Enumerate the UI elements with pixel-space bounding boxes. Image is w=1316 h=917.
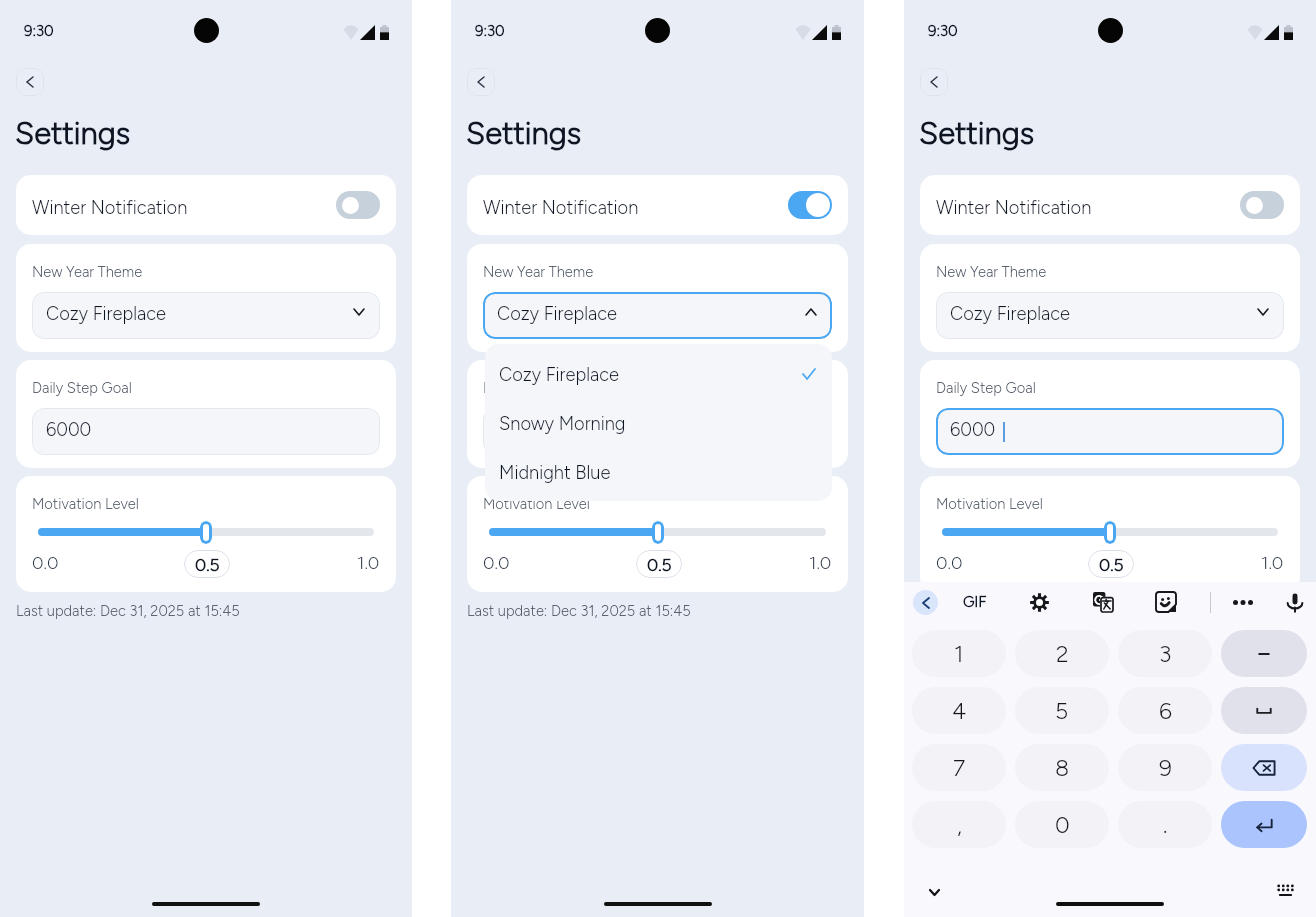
- staticText: 9: [1159, 754, 1172, 782]
- staticText: Motivation Level: [936, 495, 1043, 513]
- staticText: 6000: [950, 419, 996, 441]
- staticText: Settings: [466, 115, 582, 152]
- staticText: Motivation Level: [483, 495, 590, 513]
- staticText: New Year Theme: [483, 263, 594, 281]
- staticText: 1.0: [809, 552, 832, 574]
- staticText: 0.5: [195, 554, 220, 575]
- button[interactable]: 2: [1015, 630, 1109, 677]
- button[interactable]: Snowy Morning: [485, 398, 832, 447]
- staticText: Midnight Blue: [499, 462, 611, 484]
- button[interactable]: 6: [1118, 687, 1212, 734]
- staticText: Motivation Level: [32, 495, 139, 513]
- staticText: Cozy Fireplace: [46, 303, 166, 325]
- button[interactable]: More options: [1233, 600, 1253, 605]
- staticText: 1.0: [1261, 552, 1284, 574]
- staticText: 9:30: [475, 22, 505, 40]
- staticText: 3: [1159, 640, 1172, 668]
- staticText: 8: [1055, 754, 1070, 782]
- staticText: Daily Step Goal: [483, 379, 583, 397]
- staticText: 0.0: [936, 552, 963, 574]
- staticText: Last update: Dec 31, 2025 at 15:45: [920, 602, 1144, 620]
- button[interactable]: Cozy Fireplace: [483, 292, 832, 339]
- staticText: ,: [957, 811, 962, 839]
- button[interactable]: Toggle Winter Notification: [1240, 191, 1284, 219]
- button[interactable]: Space: [1221, 687, 1307, 734]
- staticText: New Year Theme: [936, 263, 1047, 281]
- button[interactable]: Hide keyboard: [929, 889, 940, 896]
- button[interactable]: .: [1118, 801, 1212, 848]
- button[interactable]: 1: [912, 630, 1006, 677]
- staticText: Winter Notification: [936, 197, 1092, 219]
- button[interactable]: 0.5: [636, 550, 682, 578]
- staticText: 0.0: [483, 552, 510, 574]
- button[interactable]: Motivation slider: [652, 521, 664, 544]
- button[interactable]: 7: [912, 744, 1006, 791]
- button[interactable]: Winter Notification: [920, 175, 1300, 235]
- staticText: Winter Notification: [32, 197, 188, 219]
- staticText: 0: [1055, 811, 1070, 839]
- button[interactable]: Midnight Blue: [485, 447, 832, 496]
- staticText: 9:30: [24, 22, 54, 40]
- staticText: Cozy Fireplace: [950, 303, 1070, 325]
- staticText: 7: [953, 754, 966, 782]
- staticText: .: [1163, 811, 1168, 839]
- staticText: 6: [1159, 697, 1172, 725]
- button[interactable]: Backspace: [1221, 744, 1307, 791]
- button[interactable]: 3: [1118, 630, 1212, 677]
- button[interactable]: Voice input: [1287, 593, 1303, 612]
- staticText: 1: [954, 640, 964, 668]
- staticText: Cozy Fireplace: [499, 364, 619, 386]
- button[interactable]: 9: [1118, 744, 1212, 791]
- staticText: Cozy Fireplace: [497, 303, 617, 325]
- button[interactable]: Back: [467, 68, 495, 96]
- staticText: 6000: [497, 419, 543, 441]
- button[interactable]: Stickers: [1156, 592, 1176, 612]
- staticText: Last update: Dec 31, 2025 at 15:45: [467, 602, 691, 620]
- button[interactable]: 0.5: [184, 550, 230, 578]
- staticText: 5: [1055, 697, 1069, 725]
- staticText: Daily Step Goal: [32, 379, 132, 397]
- button[interactable]: 8: [1015, 744, 1109, 791]
- button[interactable]: Toggle Winter Notification: [336, 191, 380, 219]
- staticText: 0.5: [1099, 554, 1124, 575]
- staticText: 2: [1056, 640, 1069, 668]
- staticText: Snowy Morning: [499, 413, 626, 435]
- button[interactable]: Switch keyboard: [1277, 885, 1294, 896]
- button[interactable]: 6000: [936, 408, 1284, 455]
- button[interactable]: 0.5: [1088, 550, 1134, 578]
- staticText: 9:30: [928, 22, 958, 40]
- button[interactable]: Cozy Fireplace: [32, 292, 380, 339]
- button[interactable]: GIF: [963, 593, 987, 611]
- staticText: 1.0: [357, 552, 380, 574]
- button[interactable]: ,: [912, 801, 1006, 848]
- button[interactable]: Back: [920, 68, 948, 96]
- button[interactable]: 0: [1015, 801, 1109, 848]
- button[interactable]: Keyboard settings: [1030, 593, 1049, 612]
- button[interactable]: 5: [1015, 687, 1109, 734]
- staticText: New Year Theme: [32, 263, 143, 281]
- button[interactable]: 4: [912, 687, 1006, 734]
- button[interactable]: Enter: [1221, 801, 1307, 848]
- button[interactable]: Toggle Winter Notification: [788, 191, 832, 219]
- staticText: 0.0: [32, 552, 59, 574]
- staticText: Last update: Dec 31, 2025 at 15:45: [16, 602, 240, 620]
- button[interactable]: Motivation slider: [200, 521, 212, 544]
- button[interactable]: Winter Notification: [467, 175, 848, 235]
- button[interactable]: Minus: [1221, 630, 1307, 677]
- staticText: 0.5: [647, 554, 672, 575]
- staticText: 4: [952, 697, 967, 725]
- button[interactable]: Cozy Fireplace: [485, 349, 832, 398]
- button[interactable]: Winter Notification: [16, 175, 396, 235]
- button[interactable]: Back: [16, 68, 44, 96]
- staticText: Settings: [15, 115, 131, 152]
- staticText: Settings: [919, 115, 1035, 152]
- button[interactable]: 6000: [32, 408, 380, 455]
- button[interactable]: 6000: [483, 408, 832, 455]
- staticText: Daily Step Goal: [936, 379, 1036, 397]
- button[interactable]: Motivation slider: [1104, 521, 1116, 544]
- staticText: 6000: [46, 419, 92, 441]
- staticText: Winter Notification: [483, 197, 639, 219]
- button[interactable]: Close suggestions: [913, 590, 938, 615]
- button[interactable]: Cozy Fireplace: [936, 292, 1284, 339]
- button[interactable]: Translate: [1093, 592, 1113, 612]
